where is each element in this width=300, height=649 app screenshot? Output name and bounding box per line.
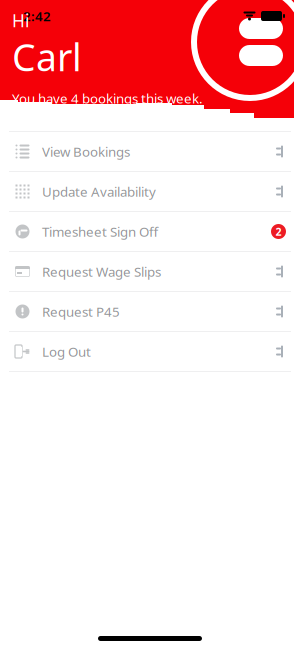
staticText: Request P45 bbox=[42, 303, 120, 320]
staticText: Request Wage Slips bbox=[42, 263, 161, 280]
staticText: 2 bbox=[275, 224, 281, 239]
button[interactable]: Update Availability bbox=[0, 172, 300, 211]
staticText: Hi bbox=[12, 9, 29, 32]
staticText: Carl bbox=[12, 32, 82, 82]
staticText: View Bookings bbox=[42, 143, 130, 160]
button[interactable]: Request Wage Slips bbox=[0, 252, 300, 291]
staticText: You have 4 bookings this week. bbox=[12, 90, 203, 107]
staticText: 2:42 bbox=[23, 7, 51, 25]
button[interactable]: Timesheet Sign Off bbox=[0, 212, 300, 251]
button[interactable]: View Bookings bbox=[0, 132, 300, 171]
button[interactable]: Log Out bbox=[0, 332, 300, 371]
button[interactable]: Request P45 bbox=[0, 292, 300, 331]
staticText: Log Out bbox=[42, 343, 91, 360]
staticText: Update Availability bbox=[42, 183, 156, 200]
staticText: Timesheet Sign Off bbox=[42, 223, 158, 240]
